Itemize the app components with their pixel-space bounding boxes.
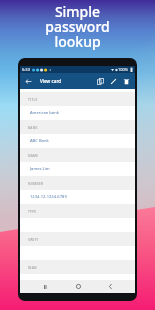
staticText: NUMBER xyxy=(28,181,44,185)
button[interactable]: Back xyxy=(103,280,117,293)
staticText: James Lim xyxy=(30,166,50,172)
staticText: TYPE xyxy=(28,209,37,213)
button[interactable]: NAME xyxy=(20,148,135,176)
button[interactable]: SWIFT xyxy=(20,232,135,260)
button[interactable]: IBAN xyxy=(20,260,135,280)
staticText: 100% xyxy=(118,67,129,72)
button[interactable]: Home xyxy=(71,280,85,293)
staticText: TITLE xyxy=(28,97,38,101)
staticText: IBAN xyxy=(28,265,37,269)
staticText: ABC Bank xyxy=(30,138,49,144)
staticText: View card xyxy=(40,78,62,84)
staticText: 1234-12-1234-6789 xyxy=(30,194,67,200)
staticText: Simple password lookup xyxy=(45,2,110,51)
button[interactable]: TYPE xyxy=(20,204,135,232)
staticText: SWIFT xyxy=(28,237,39,241)
staticText: 6:33 xyxy=(22,67,30,72)
button[interactable]: BANK xyxy=(20,120,135,148)
staticText: NAME xyxy=(28,153,39,157)
button[interactable]: NUMBER xyxy=(20,176,135,204)
staticText: American bank xyxy=(30,110,59,116)
button[interactable]: Recents xyxy=(38,280,52,293)
button[interactable]: Edit xyxy=(107,74,119,89)
staticText: BANK xyxy=(28,125,38,129)
button[interactable]: TITLE xyxy=(20,92,135,120)
button[interactable]: Copy xyxy=(94,74,106,89)
button[interactable]: Back xyxy=(23,74,34,89)
button[interactable]: Delete xyxy=(120,74,132,89)
